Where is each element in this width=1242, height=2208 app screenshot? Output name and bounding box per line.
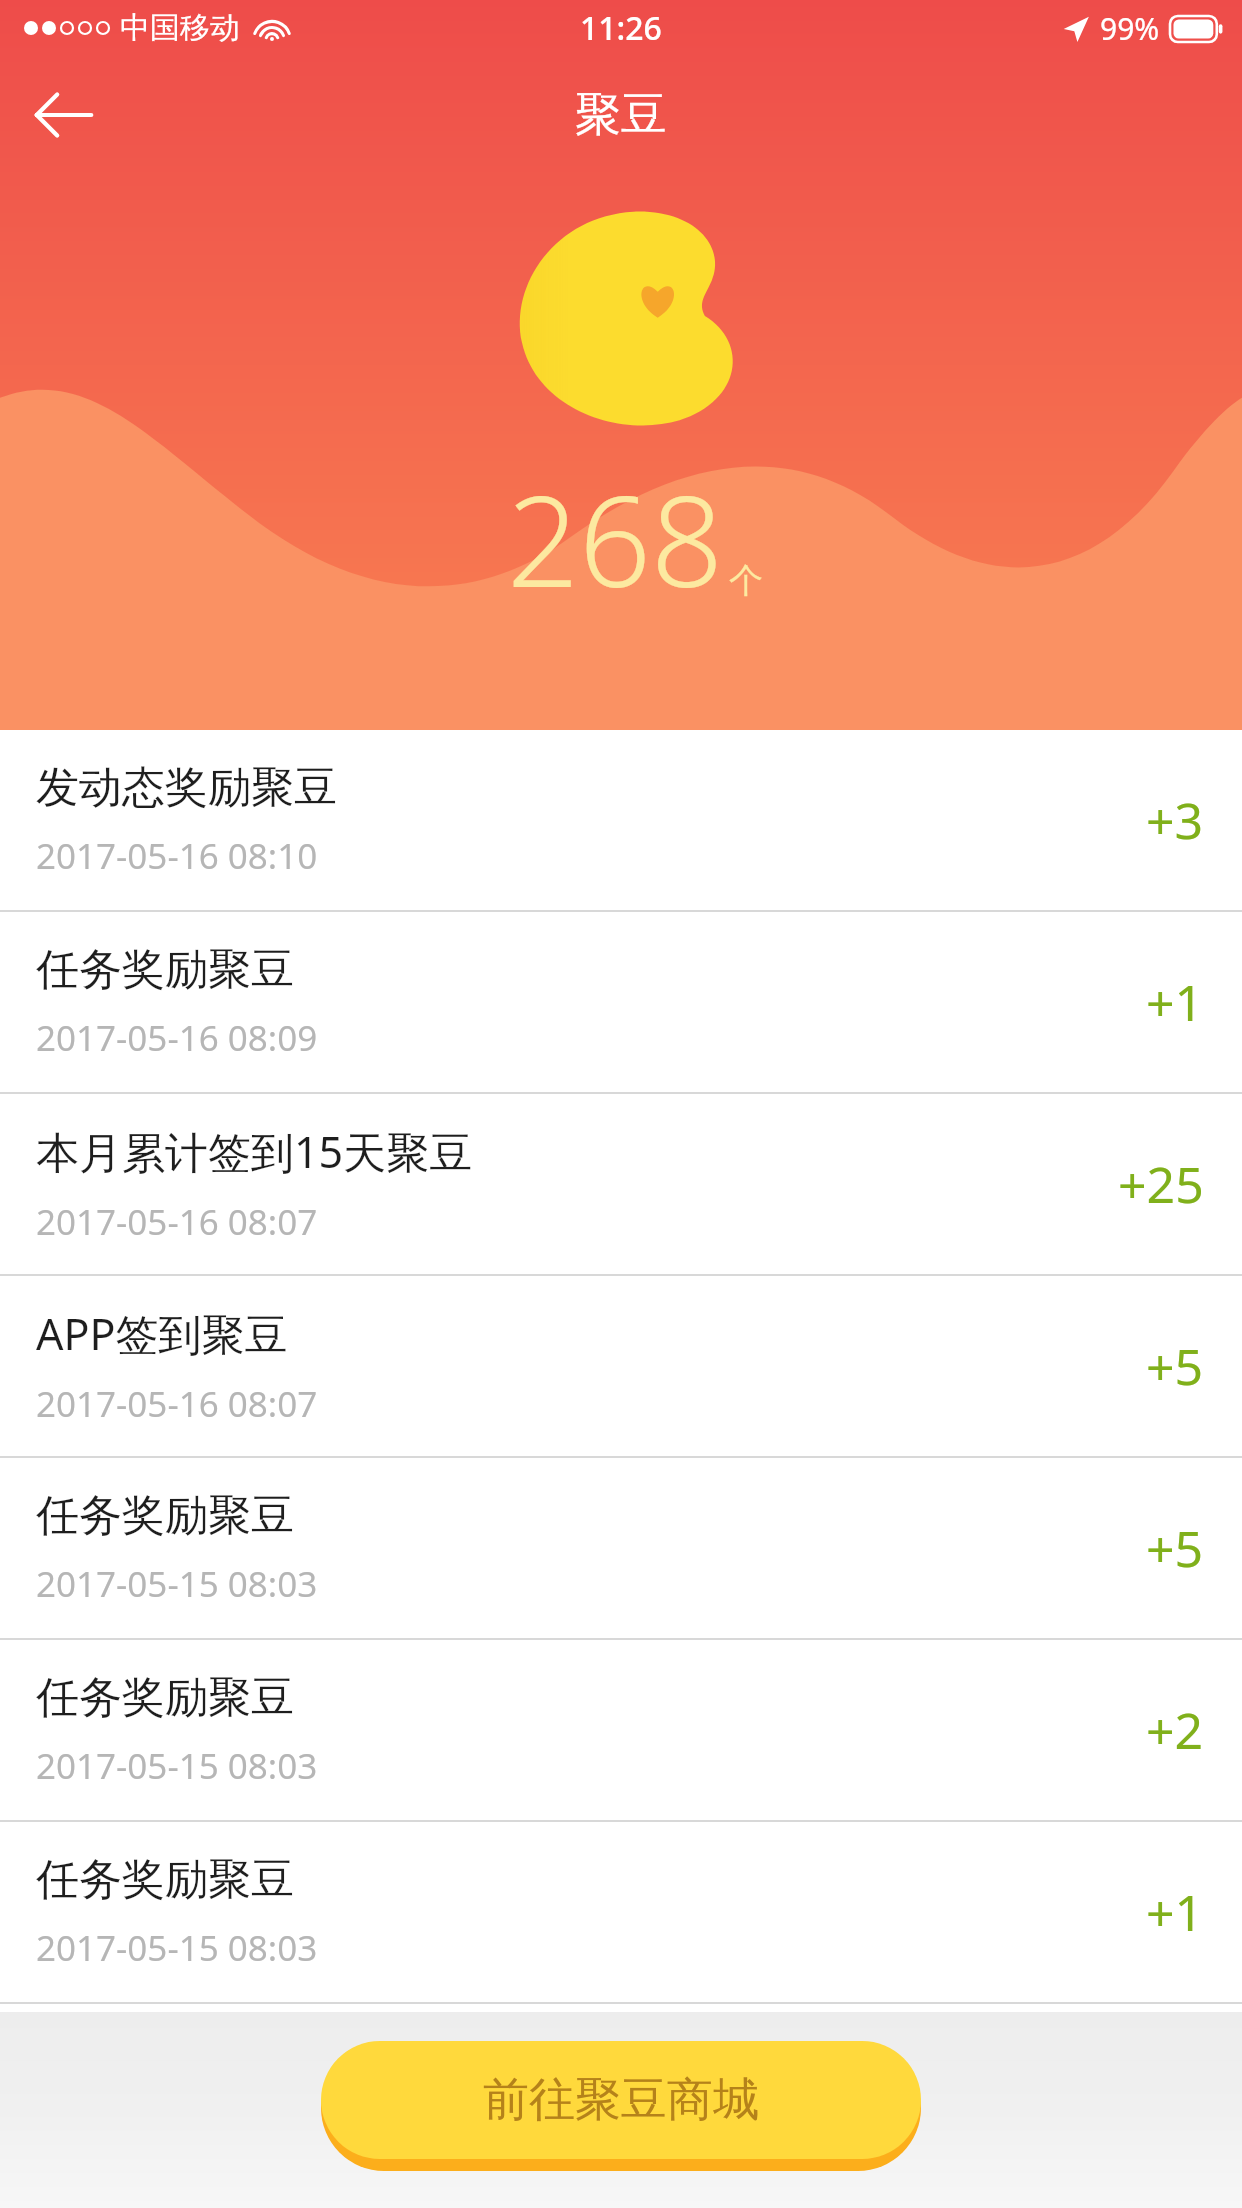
staticText: +1 — [1146, 968, 1204, 1036]
button[interactable]: 发动态奖励聚豆 — [0, 730, 1242, 910]
staticText: 前往聚豆商城 — [483, 2071, 759, 2129]
button[interactable]: APP签到聚豆 — [0, 1276, 1242, 1456]
staticText: 任务奖励聚豆 — [36, 943, 294, 997]
staticText: 任务奖励聚豆 — [36, 1853, 294, 1907]
staticText: 2017-05-15 08:03 — [36, 1742, 318, 1790]
staticText: +1 — [1146, 1878, 1204, 1946]
staticText: 99% — [1100, 8, 1160, 49]
staticText: 本月累计签到15天聚豆 — [36, 1122, 473, 1181]
staticText: 11:26 — [580, 6, 662, 50]
button[interactable]: 任务奖励聚豆 — [0, 1458, 1242, 1638]
button[interactable]: 任务奖励聚豆 — [0, 1640, 1242, 1820]
staticText: 发动态奖励聚豆 — [36, 761, 337, 815]
staticText: +2 — [1146, 1696, 1204, 1764]
staticText: +5 — [1146, 1514, 1204, 1582]
button[interactable]: 任务奖励聚豆 — [0, 912, 1242, 1092]
staticText: APP签到聚豆 — [36, 1304, 288, 1363]
staticText: +25 — [1118, 1150, 1204, 1218]
staticText: 2017-05-15 08:03 — [36, 1560, 318, 1608]
staticText: 任务奖励聚豆 — [36, 1671, 294, 1725]
staticText: 2017-05-16 08:07 — [36, 1380, 318, 1428]
staticText: 中国移动 — [120, 9, 240, 47]
staticText: 2017-05-16 08:10 — [36, 832, 318, 880]
button[interactable]: 任务奖励聚豆 — [0, 1822, 1242, 2002]
staticText: 2017-05-16 08:09 — [36, 1014, 318, 1062]
staticText: 2017-05-15 08:03 — [36, 1924, 318, 1972]
staticText: +3 — [1146, 786, 1204, 854]
button[interactable]: 本月累计签到15天聚豆 — [0, 1094, 1242, 1274]
staticText: +5 — [1146, 1332, 1204, 1400]
button[interactable]: 前往聚豆商城 — [321, 2041, 921, 2159]
staticText: 聚豆 — [575, 86, 667, 144]
staticText: 268 — [507, 452, 723, 624]
button[interactable]: Back — [14, 65, 114, 165]
staticText: 任务奖励聚豆 — [36, 1489, 294, 1543]
staticText: 个 — [729, 559, 763, 602]
staticText: 2017-05-16 08:07 — [36, 1198, 318, 1246]
